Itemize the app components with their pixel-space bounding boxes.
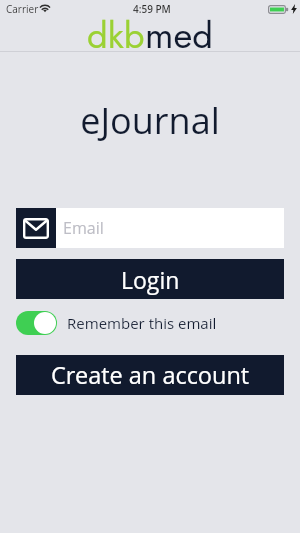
staticText: med	[145, 9, 214, 53]
staticText: Email	[63, 217, 104, 239]
button[interactable]: Remember this email toggle	[16, 311, 217, 335]
button[interactable]: Email	[16, 208, 284, 248]
staticText: 4:59 PM	[133, 2, 171, 16]
staticText: Create an account	[51, 359, 250, 391]
staticText: Login	[121, 264, 180, 295]
button[interactable]: Login	[16, 259, 284, 299]
other: Email	[16, 208, 56, 248]
staticText: Carrier	[6, 2, 39, 16]
button[interactable]: Create an account	[16, 355, 284, 395]
staticText: eJournal	[0, 96, 300, 145]
other: Remember this email toggle	[16, 311, 57, 335]
staticText: dkb	[87, 9, 145, 53]
staticText: Remember this email	[67, 313, 217, 333]
